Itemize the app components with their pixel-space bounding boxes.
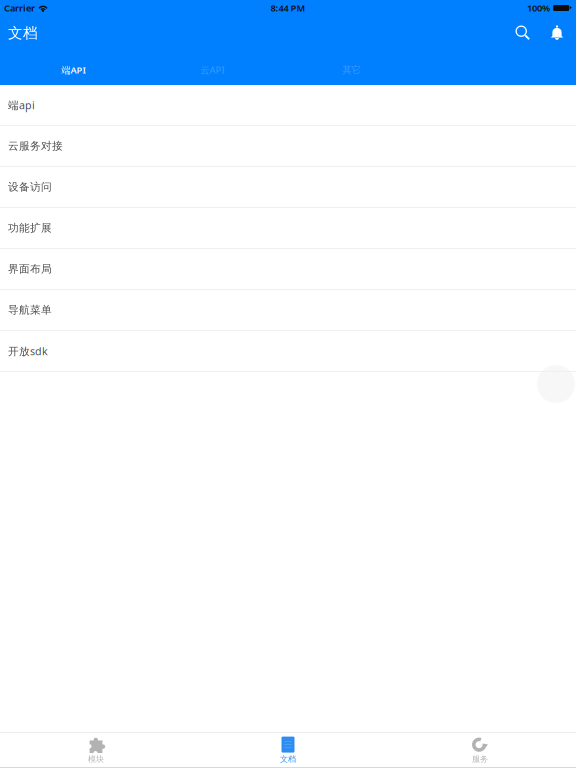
staticText: 100% <box>527 2 550 14</box>
button[interactable]: 服务 <box>384 732 576 767</box>
staticText: 文档 <box>8 24 38 42</box>
button[interactable]: 文档 <box>192 732 384 767</box>
button[interactable]: 模块 <box>0 732 192 767</box>
button[interactable]: 云API <box>143 46 282 85</box>
button[interactable]: Search <box>506 20 540 46</box>
button[interactable]: 云服务对接 <box>0 126 576 167</box>
button[interactable]: 界面布局 <box>0 249 576 290</box>
staticText: 8:44 PM <box>270 2 305 14</box>
staticText: 端api <box>8 98 35 112</box>
button[interactable]: 端api <box>0 85 576 126</box>
staticText: 导航菜单 <box>8 303 52 316</box>
staticText: 界面布局 <box>8 262 52 275</box>
button[interactable]: 端API <box>4 46 143 85</box>
staticText: 云API <box>200 64 224 76</box>
button[interactable]: Notifications <box>540 20 574 46</box>
staticText: 端API <box>61 64 85 76</box>
button[interactable]: 功能扩展 <box>0 208 576 249</box>
staticText: 开放sdk <box>8 344 48 358</box>
staticText: 功能扩展 <box>8 221 52 234</box>
staticText: 设备访问 <box>8 180 52 193</box>
button[interactable]: 设备访问 <box>0 167 576 208</box>
button[interactable]: 开放sdk <box>0 331 576 372</box>
staticText: 服务 <box>472 754 488 764</box>
staticText: 模块 <box>88 754 104 764</box>
staticText: Carrier <box>4 2 35 14</box>
staticText: 其它 <box>342 64 360 76</box>
button[interactable]: 导航菜单 <box>0 290 576 331</box>
staticText: 文档 <box>280 754 296 764</box>
button[interactable]: 其它 <box>282 46 421 85</box>
staticText: 云服务对接 <box>8 139 63 152</box>
